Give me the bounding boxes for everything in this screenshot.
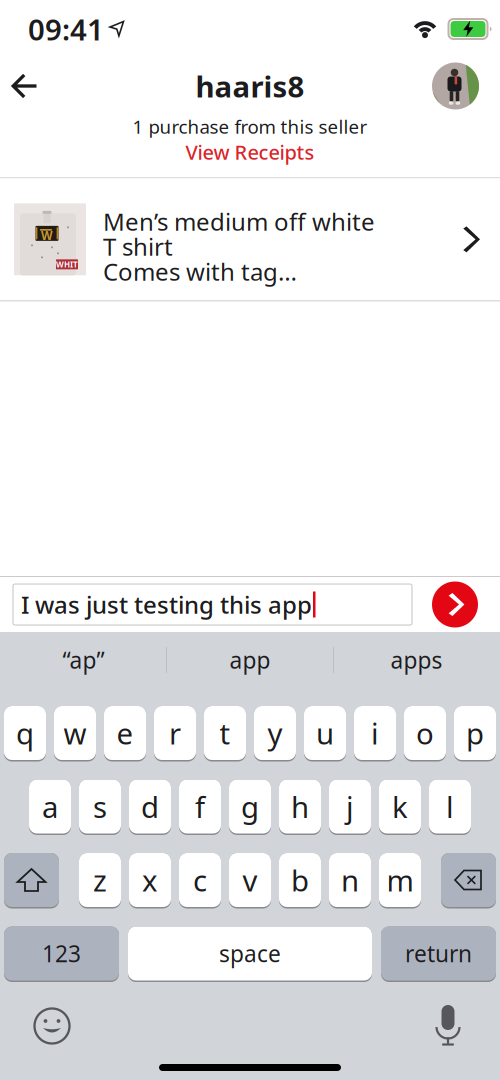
button[interactable]: return	[381, 926, 496, 982]
button[interactable]: W	[0, 178, 500, 300]
staticText: t	[219, 713, 230, 752]
button[interactable]: f	[179, 779, 221, 835]
staticText: apps	[390, 645, 442, 675]
button[interactable]: p	[454, 706, 496, 761]
button[interactable]: y	[254, 706, 296, 761]
staticText: a	[42, 787, 58, 826]
button[interactable]: a	[29, 779, 71, 835]
staticText: space	[219, 938, 281, 968]
staticText: i	[371, 713, 379, 752]
button[interactable]: m	[379, 853, 421, 908]
button[interactable]: z	[79, 853, 121, 908]
button[interactable]: x	[129, 853, 171, 908]
staticText: p	[466, 713, 484, 752]
button[interactable]: u	[304, 706, 346, 761]
button[interactable]: q	[4, 706, 46, 761]
button[interactable]: Back	[0, 73, 38, 99]
button[interactable]: space	[128, 926, 372, 982]
staticText: W	[41, 227, 53, 243]
staticText: x	[142, 860, 158, 899]
staticText: h	[291, 787, 309, 826]
staticText: T shirt	[103, 230, 173, 262]
button[interactable]: “ap”	[1, 632, 166, 688]
staticText: b	[291, 860, 309, 899]
button[interactable]: n	[329, 853, 371, 908]
staticText: z	[93, 860, 107, 899]
button[interactable]: Emoji	[22, 996, 82, 1056]
staticText: 123	[42, 938, 81, 968]
staticText: u	[316, 713, 334, 752]
staticText: Comes with tag…	[103, 255, 297, 287]
button[interactable]: k	[379, 779, 421, 835]
staticText: haaris8	[195, 66, 304, 105]
staticText: j	[346, 787, 354, 826]
button[interactable]: c	[179, 853, 221, 908]
staticText: e	[116, 713, 133, 752]
staticText: View Receipts	[185, 139, 314, 165]
staticText: m	[386, 860, 413, 899]
staticText: app	[229, 645, 270, 675]
button[interactable]: Send	[432, 581, 478, 627]
button[interactable]: j	[329, 779, 371, 835]
staticText: v	[242, 860, 257, 899]
staticText: return	[405, 938, 472, 968]
staticText: y	[267, 713, 282, 752]
staticText: d	[141, 787, 159, 826]
staticText: 09:41	[28, 9, 104, 48]
staticText: o	[416, 713, 434, 752]
button[interactable]: Delete	[441, 853, 496, 908]
staticText: g	[241, 787, 259, 826]
button[interactable]: t	[204, 706, 246, 761]
button[interactable]: Shift	[4, 853, 59, 908]
staticText: I was just testing this app	[21, 589, 312, 620]
staticText: q	[16, 713, 34, 752]
button[interactable]: g	[229, 779, 271, 835]
button[interactable]: Profile	[432, 62, 479, 109]
button[interactable]: e	[104, 706, 146, 761]
staticText: Men’s medium off white	[103, 205, 375, 237]
button[interactable]: h	[279, 779, 321, 835]
button[interactable]: i	[354, 706, 396, 761]
staticText: WHIT	[56, 259, 78, 270]
button[interactable]: s	[79, 779, 121, 835]
staticText: k	[392, 787, 408, 826]
button[interactable]: app	[167, 632, 333, 688]
staticText: f	[195, 787, 205, 826]
button[interactable]: o	[404, 706, 446, 761]
button[interactable]: apps	[334, 632, 499, 688]
button[interactable]: v	[229, 853, 271, 908]
staticText: 1 purchase from this seller	[132, 114, 367, 139]
button[interactable]: 123	[4, 926, 119, 982]
button[interactable]: w	[54, 706, 96, 761]
staticText: s	[93, 787, 107, 826]
button[interactable]: Dictate	[423, 996, 473, 1056]
staticText: l	[446, 787, 454, 826]
button[interactable]: l	[429, 779, 471, 835]
staticText: r	[169, 713, 181, 752]
staticText: c	[193, 860, 207, 899]
button[interactable]: b	[279, 853, 321, 908]
button[interactable]: r	[154, 706, 196, 761]
staticText: “ap”	[62, 645, 104, 675]
button[interactable]: View Receipts	[185, 139, 314, 165]
staticText: n	[341, 860, 359, 899]
staticText: w	[63, 713, 86, 752]
button[interactable]: d	[129, 779, 171, 835]
